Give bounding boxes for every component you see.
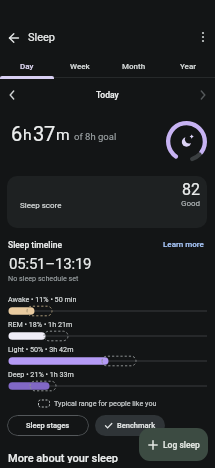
staticText: 82 xyxy=(182,180,200,199)
staticText: Sleep xyxy=(28,31,56,44)
staticText: Deep • 21% • 1h 33m xyxy=(8,370,74,378)
button[interactable]: Day xyxy=(0,54,53,78)
staticText: Today xyxy=(96,90,119,100)
staticText: m xyxy=(56,126,70,144)
staticText: Sleep stages xyxy=(26,421,70,430)
staticText: Week xyxy=(70,62,90,71)
button[interactable]: Year xyxy=(161,54,215,78)
staticText: More about your sleep xyxy=(8,452,118,465)
staticText: of 8h goal xyxy=(74,131,117,142)
staticText: Light • 50% • 3h 42m xyxy=(8,345,74,353)
staticText: REM • 18% • 1h 21m xyxy=(8,320,73,328)
staticText: 6 xyxy=(11,122,22,145)
staticText: Year xyxy=(180,62,197,71)
staticText: 05:51–13:19 xyxy=(9,255,92,273)
button[interactable]: Today xyxy=(0,83,215,107)
button[interactable] xyxy=(196,88,210,102)
staticText: Day xyxy=(20,62,34,71)
button[interactable] xyxy=(196,30,210,44)
button[interactable]: Month xyxy=(107,54,161,78)
button[interactable] xyxy=(5,88,19,102)
button[interactable] xyxy=(6,30,22,46)
staticText: h xyxy=(23,126,32,144)
staticText: Benchmark xyxy=(117,421,156,430)
button[interactable] xyxy=(165,120,208,163)
staticText: 37 xyxy=(33,122,55,145)
staticText: Month xyxy=(122,62,146,71)
staticText: Awake • 11% • 50 min xyxy=(8,295,77,303)
button[interactable]: Sleep stages xyxy=(7,415,89,436)
staticText: Sleep timeline xyxy=(8,240,62,250)
staticText: Log sleep xyxy=(163,440,200,450)
staticText: Typical range for people like you xyxy=(54,399,157,407)
button[interactable]: Week xyxy=(53,54,107,78)
staticText: Sleep score xyxy=(20,201,62,210)
button[interactable]: Sleep score xyxy=(7,176,207,228)
button[interactable]: Benchmark xyxy=(95,415,165,436)
button[interactable]: Log sleep xyxy=(139,428,208,461)
staticText: Good xyxy=(181,199,201,208)
staticText: No sleep schedule set xyxy=(8,274,79,282)
